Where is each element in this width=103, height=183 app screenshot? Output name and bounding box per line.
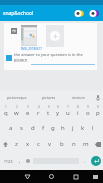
button[interactable]: a	[5, 120, 16, 136]
staticText: 7	[67, 105, 69, 109]
staticText: 4	[38, 105, 40, 109]
button[interactable]: s	[16, 120, 27, 136]
staticText: IMG_20180417	[21, 47, 42, 51]
button[interactable]: Back	[21, 170, 34, 183]
button[interactable]: picturesque	[0, 91, 33, 104]
staticText: .	[84, 158, 86, 165]
button[interactable]: d	[27, 120, 38, 136]
button[interactable]: 2	[11, 104, 22, 120]
button[interactable]: h	[58, 120, 68, 136]
staticText: z	[15, 140, 18, 148]
staticText: picture	[14, 57, 28, 62]
button[interactable]: k	[78, 120, 88, 136]
button[interactable]: Backspace	[92, 136, 103, 152]
staticText: m	[83, 140, 89, 148]
button[interactable]: l	[88, 120, 98, 136]
button[interactable]: Recents	[69, 170, 82, 183]
button[interactable]: Emoji	[24, 152, 32, 170]
staticText: a	[9, 124, 13, 132]
staticText: 8	[77, 105, 79, 109]
staticText: o	[86, 109, 90, 117]
button[interactable]: 5	[43, 104, 53, 120]
button[interactable]: 9	[83, 104, 93, 120]
button[interactable]: Change keyboard	[90, 171, 101, 182]
staticText: u	[66, 109, 70, 117]
staticText: r	[37, 109, 40, 117]
button[interactable]: 6	[53, 104, 63, 120]
button[interactable]: x	[22, 136, 33, 152]
button[interactable]: mixture	[65, 91, 92, 104]
staticText: x	[26, 140, 30, 148]
button[interactable]: f	[38, 120, 48, 136]
staticText: s	[20, 124, 23, 132]
button[interactable]: n	[68, 136, 80, 152]
staticText: d	[31, 124, 35, 132]
staticText: n	[72, 140, 76, 148]
staticText: c	[37, 140, 40, 148]
button[interactable]: ?123	[0, 152, 16, 170]
button[interactable]: g	[48, 120, 58, 136]
staticText: t	[47, 109, 50, 117]
staticText: p	[96, 109, 100, 117]
button[interactable]: pictures	[33, 91, 65, 104]
button[interactable]: Add photo	[46, 25, 64, 47]
staticText: 3	[27, 105, 29, 109]
staticText: h	[61, 124, 65, 132]
button[interactable]: 7	[63, 104, 73, 120]
button[interactable]: Profile	[87, 6, 101, 20]
staticText: ,	[19, 158, 21, 165]
button[interactable]: b	[56, 136, 68, 152]
staticText: 1	[5, 105, 7, 109]
staticText: pictures	[42, 95, 56, 100]
button[interactable]: 1	[0, 104, 11, 120]
button[interactable]: .	[80, 152, 89, 170]
staticText: 9	[87, 105, 89, 109]
staticText: i	[77, 109, 79, 117]
staticText: ?123	[4, 159, 13, 164]
button[interactable]: 0	[93, 104, 103, 120]
staticText: 0	[97, 105, 99, 109]
button[interactable]: z	[11, 136, 22, 152]
staticText: 2	[16, 105, 18, 109]
staticText: picturesque	[7, 95, 27, 100]
staticText: k	[81, 124, 85, 132]
button[interactable]: j	[68, 120, 78, 136]
button[interactable]: 4	[33, 104, 43, 120]
staticText: f	[42, 124, 45, 132]
staticText: g	[51, 124, 55, 132]
button[interactable]: v	[44, 136, 56, 152]
button[interactable]: Voice input	[92, 91, 103, 104]
button[interactable]: ,	[16, 152, 24, 170]
staticText: the answer to your question is in the	[14, 52, 83, 57]
button[interactable]: m	[80, 136, 92, 152]
staticText: e	[26, 109, 30, 117]
staticText: l	[92, 124, 94, 132]
staticText: q	[4, 109, 8, 117]
staticText: v	[48, 140, 52, 148]
button[interactable]: c	[33, 136, 44, 152]
staticText: y	[56, 109, 60, 117]
button[interactable]: Send	[89, 152, 103, 170]
staticText: b	[60, 140, 64, 148]
staticText: w	[14, 109, 19, 117]
button[interactable]: Shift	[0, 136, 11, 152]
staticText: snap&school	[3, 10, 34, 17]
button[interactable]: Coins	[72, 6, 86, 20]
staticText: 6	[57, 105, 59, 109]
button[interactable]: 3	[22, 104, 33, 120]
button[interactable]: 8	[73, 104, 83, 120]
button[interactable]: Home	[45, 170, 58, 183]
staticText: mixture	[72, 95, 85, 100]
staticText: j	[72, 124, 74, 132]
staticText: 5	[48, 105, 50, 109]
